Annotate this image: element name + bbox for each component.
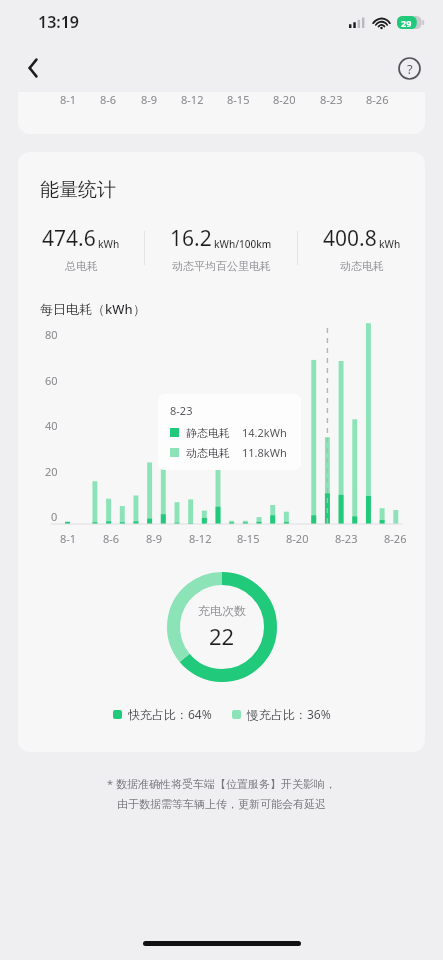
staticText: 0 xyxy=(51,509,58,524)
staticText: 14.2kWh xyxy=(242,425,287,440)
staticText: 22 xyxy=(209,621,235,651)
staticText: 8-26 xyxy=(384,531,407,546)
button[interactable]: Back xyxy=(14,48,54,88)
staticText: ? xyxy=(407,60,413,78)
staticText: 动态平均百公里电耗 xyxy=(172,259,271,272)
staticText: 动态电耗 xyxy=(186,446,230,460)
staticText: 8-26 xyxy=(366,92,389,107)
staticText: 8-23 xyxy=(320,92,343,107)
staticText: 充电次数 xyxy=(198,603,246,618)
staticText: 能量统计 xyxy=(40,178,116,202)
staticText: kWh/100km xyxy=(214,237,272,251)
staticText: 8-20 xyxy=(286,531,309,546)
staticText: 8-1 xyxy=(60,92,77,107)
staticText: kWh xyxy=(379,237,401,251)
staticText: 400.8 xyxy=(323,224,377,253)
staticText: 静态电耗 xyxy=(186,426,230,440)
staticText: 8-6 xyxy=(100,92,117,107)
staticText: 8-1 xyxy=(60,531,77,546)
staticText: 8-23 xyxy=(335,531,358,546)
staticText: kWh xyxy=(98,237,120,251)
staticText: 8-23 xyxy=(170,403,193,418)
button[interactable]: Help xyxy=(389,48,429,88)
staticText: 40 xyxy=(45,418,58,433)
staticText: * 数据准确性将受车端【位置服务】开关影响， xyxy=(44,776,399,791)
staticText: 动态电耗 xyxy=(340,259,384,272)
staticText: 8-15 xyxy=(237,531,260,546)
staticText: 总电耗 xyxy=(65,259,98,272)
staticText: 每日电耗（kWh） xyxy=(40,300,146,318)
staticText: 快充占比：64% xyxy=(128,706,212,722)
staticText: 8-12 xyxy=(189,531,212,546)
staticText: 20 xyxy=(45,464,58,479)
staticText: 474.6 xyxy=(42,224,96,253)
staticText: 29 xyxy=(401,17,412,29)
staticText: 60 xyxy=(45,373,58,388)
staticText: 11.8kWh xyxy=(242,445,287,460)
staticText: 8-9 xyxy=(146,531,163,546)
staticText: 8-9 xyxy=(141,92,158,107)
staticText: 8-20 xyxy=(273,92,296,107)
staticText: 由于数据需等车辆上传，更新可能会有延迟 xyxy=(44,797,399,811)
staticText: 8-12 xyxy=(181,92,204,107)
staticText: 慢充占比：36% xyxy=(247,706,331,722)
staticText: 80 xyxy=(45,327,58,342)
staticText: 16.2 xyxy=(170,224,212,253)
staticText: 8-6 xyxy=(103,531,120,546)
staticText: 8-15 xyxy=(227,92,250,107)
staticText: 13:19 xyxy=(38,11,80,33)
